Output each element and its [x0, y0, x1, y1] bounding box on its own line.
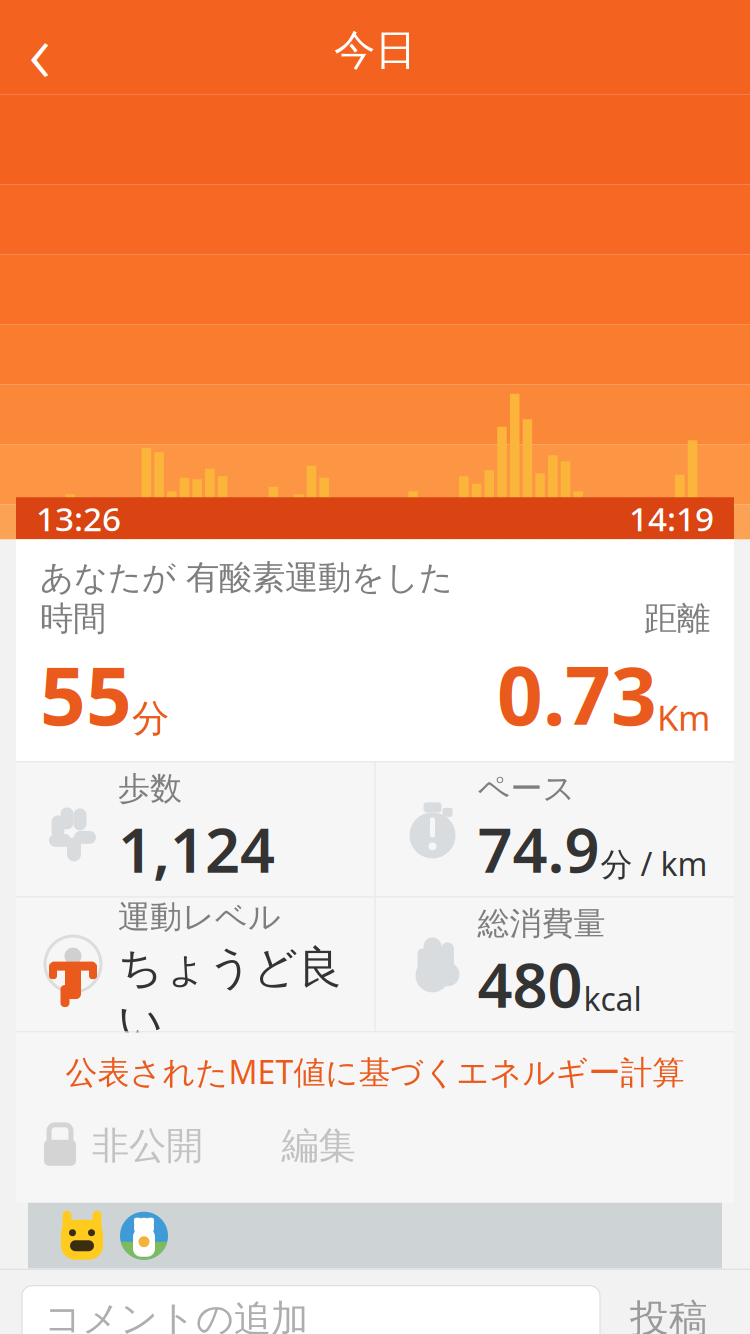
- staticText: Km: [657, 694, 710, 740]
- button[interactable]: 戻る: [0, 6, 80, 94]
- staticText: ‹: [28, 0, 51, 107]
- button[interactable]: コメントの追加: [22, 1286, 600, 1334]
- staticText: 距離: [644, 598, 710, 639]
- button[interactable]: 非公開: [16, 1111, 203, 1181]
- button[interactable]: スタンプ: [56, 1210, 108, 1262]
- staticText: 1,124: [118, 808, 275, 890]
- button[interactable]: ユーザー: [120, 1212, 168, 1260]
- button[interactable]: 編集: [251, 1111, 385, 1181]
- staticText: 公表されたMET値に基づくエネルギー計算: [65, 1050, 684, 1093]
- staticText: 55: [40, 641, 132, 747]
- staticText: 編集: [281, 1123, 355, 1169]
- staticText: 歩数: [118, 769, 182, 808]
- staticText: 非公開: [92, 1123, 203, 1169]
- staticText: ちょうど良い: [118, 941, 342, 1049]
- staticText: 今日: [334, 25, 416, 76]
- staticText: 総消費量: [477, 904, 605, 943]
- staticText: 投稿: [630, 1295, 708, 1334]
- staticText: 14:19: [629, 496, 714, 540]
- staticText: ペース: [477, 769, 575, 808]
- staticText: 分: [132, 695, 169, 741]
- staticText: kcal: [583, 977, 641, 1020]
- staticText: あなたが 有酸素運動をした 時間: [40, 557, 453, 639]
- button[interactable]: 公表されたMET値に基づくエネルギー計算: [16, 1032, 734, 1111]
- staticText: 74.9: [477, 808, 599, 890]
- staticText: 分 / km: [600, 842, 707, 885]
- staticText: 480: [477, 943, 582, 1025]
- button[interactable]: 投稿: [600, 1286, 738, 1334]
- staticText: 0.73: [497, 641, 657, 747]
- staticText: コメントの追加: [44, 1296, 308, 1334]
- staticText: 運動レベル: [118, 897, 281, 937]
- staticText: 13:26: [36, 496, 121, 540]
